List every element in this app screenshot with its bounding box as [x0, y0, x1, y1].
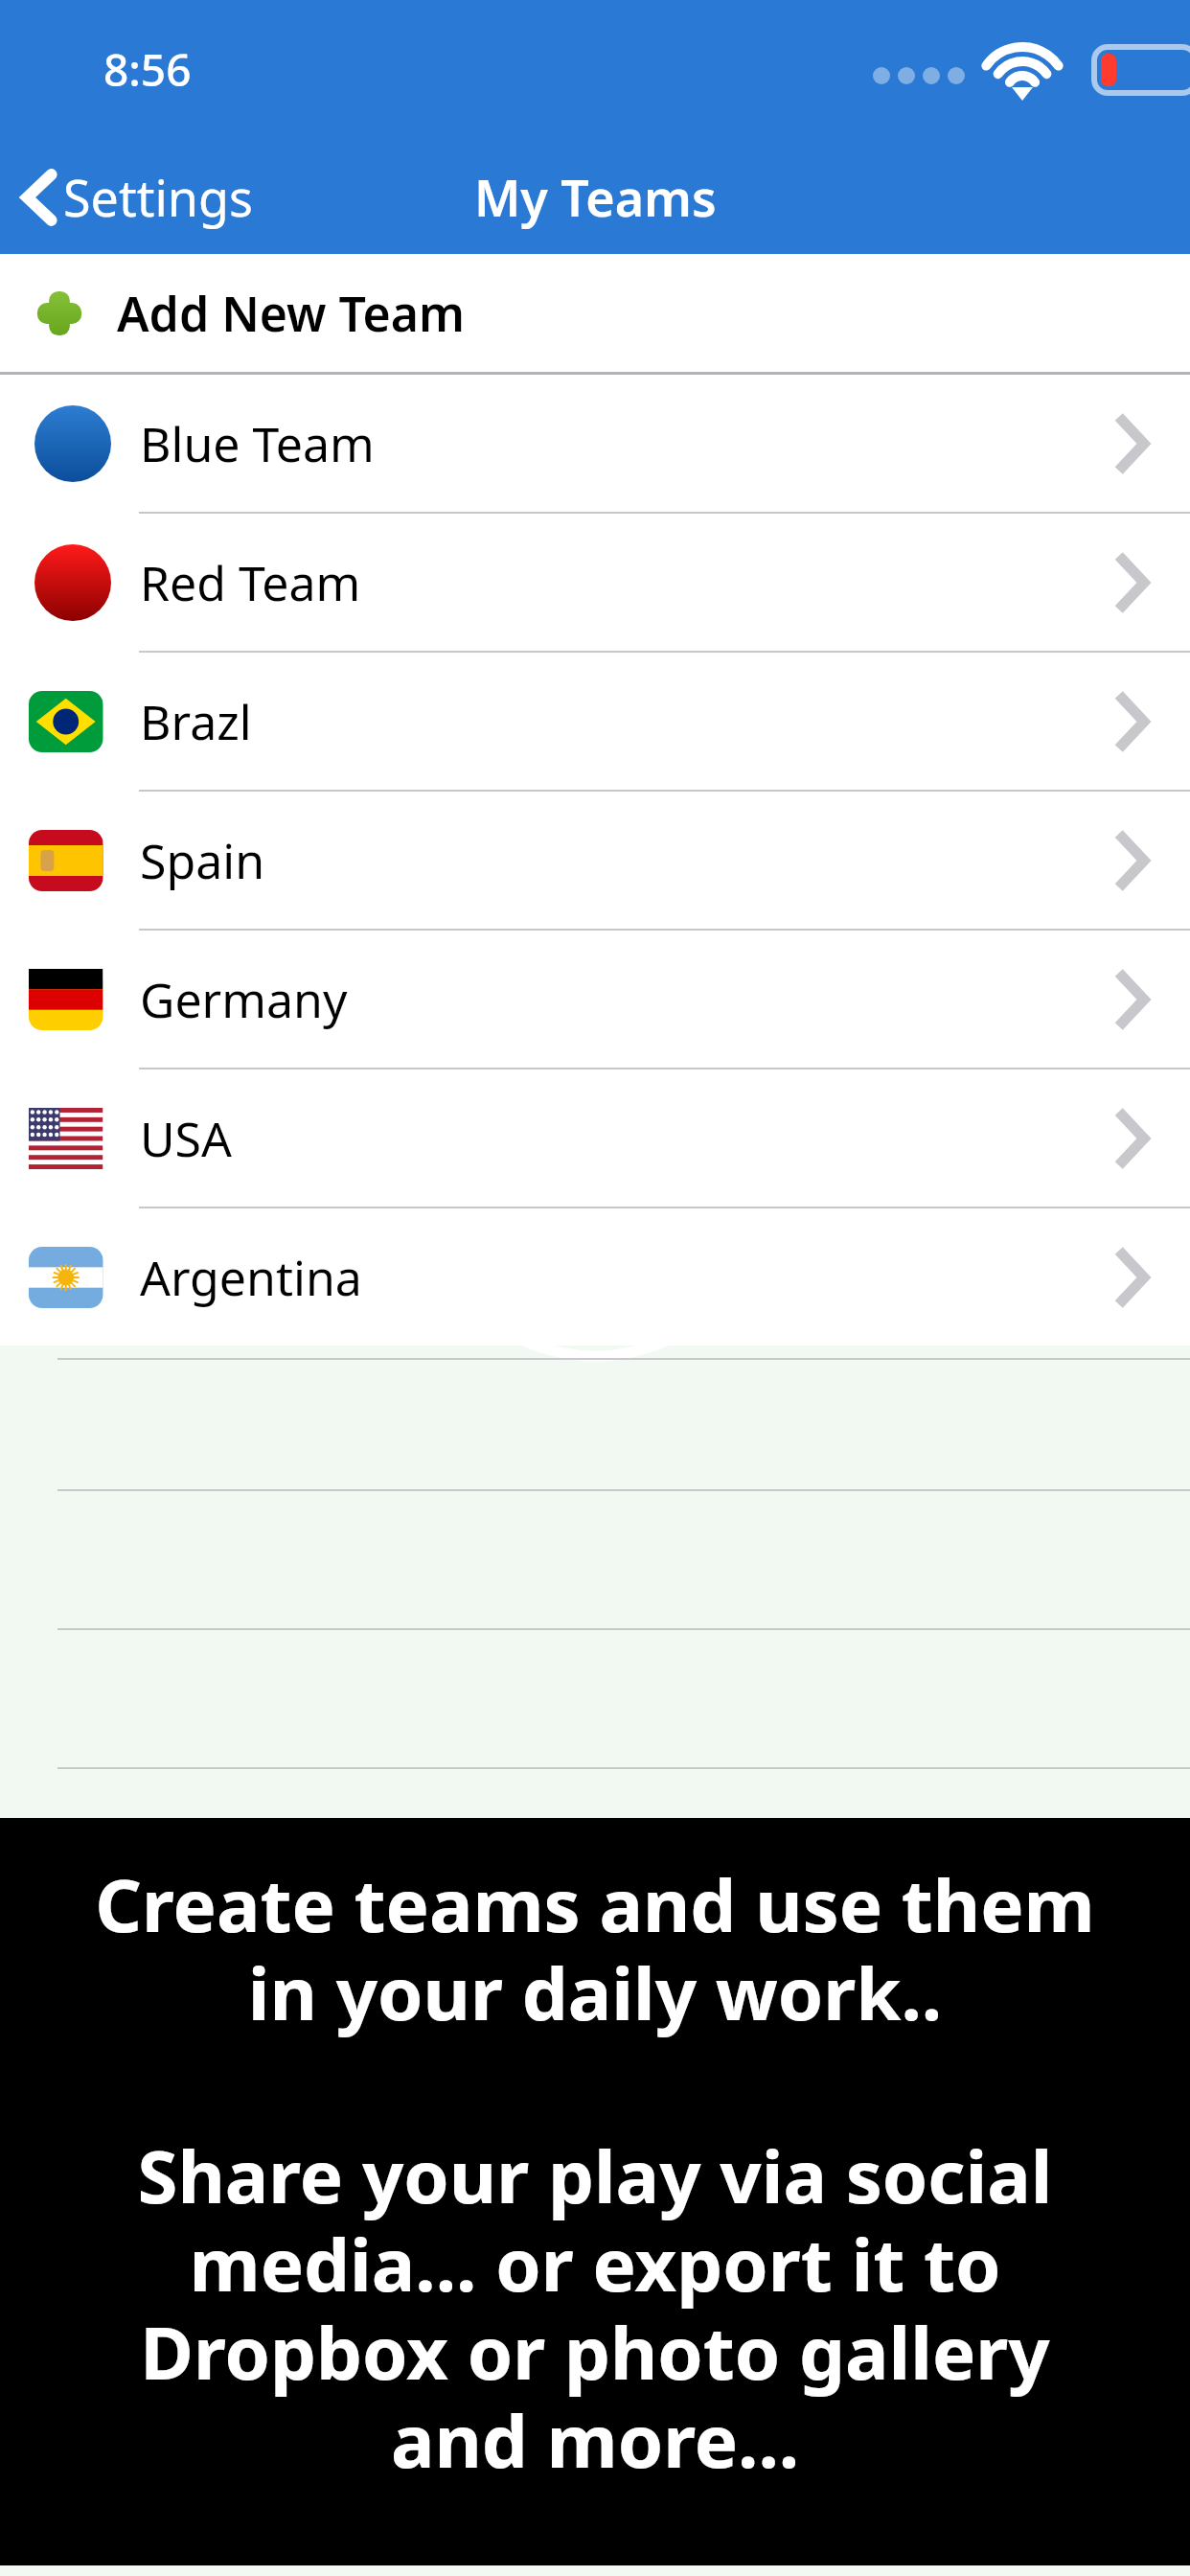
button[interactable]: Germany [0, 931, 1190, 1068]
staticText: Blue Team [140, 411, 375, 476]
staticText: Spain [140, 828, 265, 893]
button[interactable]: Blue Team [0, 375, 1190, 512]
staticText: Create teams and use them in your daily … [38, 1854, 1152, 2041]
button[interactable]: Back [0, 155, 276, 239]
button[interactable]: Red Team [0, 514, 1190, 651]
staticText: Red Team [140, 550, 361, 615]
button[interactable]: Argentina [0, 1208, 1190, 1345]
button[interactable]: USA [0, 1069, 1190, 1207]
other: Back [25, 172, 54, 222]
staticText: Argentina [140, 1245, 362, 1310]
button[interactable]: Brazl [0, 653, 1190, 790]
staticText: USA [140, 1106, 232, 1171]
button[interactable]: Add New Team [0, 254, 1190, 372]
staticText: 8:56 [103, 39, 192, 100]
button[interactable]: Spain [0, 792, 1190, 929]
other: Open Blue Team [1118, 419, 1147, 469]
staticText: Brazl [140, 689, 252, 754]
other: Open Spain [1118, 836, 1147, 885]
other: Open Red Team [1118, 558, 1147, 608]
staticText: Share your play via social media... or e… [38, 2126, 1152, 2489]
staticText: Add New Team [117, 281, 466, 346]
staticText: Settings [63, 163, 253, 231]
staticText: My Teams [474, 163, 717, 231]
other: Open USA [1118, 1114, 1147, 1163]
other: Open Argentina [1118, 1253, 1147, 1302]
other: Open Brazl [1118, 697, 1147, 747]
other: Open Germany [1118, 975, 1147, 1024]
staticText: Germany [140, 967, 348, 1032]
